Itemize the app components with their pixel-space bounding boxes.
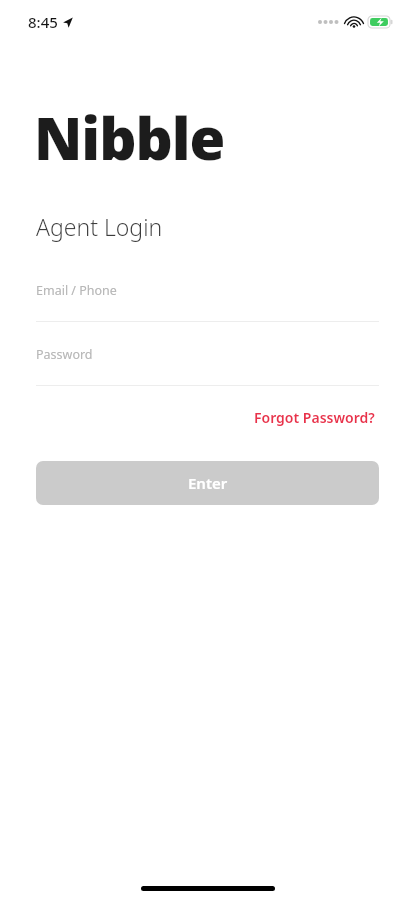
staticText: Enter (188, 473, 228, 493)
button[interactable]: Forgot Password? (250, 404, 379, 431)
staticText: Password (36, 346, 93, 363)
button[interactable]: Enter (36, 461, 379, 505)
button[interactable]: Email / Phone (36, 282, 379, 322)
staticText: Forgot Password? (254, 408, 375, 427)
staticText: Nibble (34, 98, 225, 177)
staticText: Agent Login (36, 211, 163, 242)
button[interactable]: Password (36, 346, 379, 386)
staticText: 8:45 (28, 12, 58, 32)
staticText: Email / Phone (36, 282, 117, 299)
